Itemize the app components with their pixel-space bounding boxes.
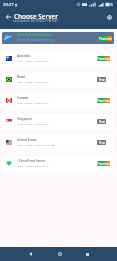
button[interactable]: United States: [2, 135, 114, 151]
staticText: Premium: [97, 99, 110, 103]
staticText: Canada: [17, 96, 29, 100]
button[interactable]: Home: [52, 247, 68, 261]
button[interactable]: ~CloudFront Server: [2, 156, 114, 172]
staticText: Premium: [97, 57, 110, 61]
staticText: ~Fast | Stable | Good for All: [17, 122, 49, 125]
staticText: ~Fast | Stable | Good for 4G: [17, 59, 49, 62]
button[interactable]: Recent apps: [79, 247, 95, 261]
staticText: Brazil: [17, 75, 26, 79]
staticText: Last Update: 03/10/2021 PM 9:47: [13, 19, 58, 23]
button[interactable]: Brazil: [2, 72, 114, 88]
button[interactable]: Australia: [2, 51, 114, 67]
staticText: 20:27: [3, 2, 14, 8]
staticText: Singapore: [17, 117, 32, 121]
staticText: Allot Best Performance: [17, 33, 53, 37]
button[interactable]: Singapore: [2, 114, 114, 130]
staticText: United States: [17, 138, 37, 142]
staticText: Choose Server: [14, 12, 58, 21]
button[interactable]: Back: [22, 247, 38, 261]
staticText: Premium: [97, 162, 110, 166]
button[interactable]: Refresh: [102, 10, 116, 24]
button[interactable]: Allot Best Performance: [2, 32, 114, 44]
staticText: Choose the best server for you: [17, 38, 55, 42]
staticText: ~Fast | Stable | Good for All: [17, 164, 49, 167]
staticText: ~Fast | Stable | Good for 4G, New: [17, 143, 55, 146]
button[interactable]: Back: [1, 10, 15, 23]
staticText: ~CloudFront Server: [17, 159, 46, 163]
staticText: Free: [99, 141, 105, 145]
staticText: Premium: [99, 37, 112, 41]
staticText: Australia: [17, 54, 31, 58]
staticText: Free: [99, 78, 105, 82]
staticText: ~Fast | Stable | Good for All: [17, 80, 49, 83]
staticText: 89%: [106, 2, 114, 7]
staticText: Free: [99, 120, 105, 124]
button[interactable]: Canada: [2, 93, 114, 109]
staticText: ~Fast | Stable | Good for All: [17, 101, 49, 104]
